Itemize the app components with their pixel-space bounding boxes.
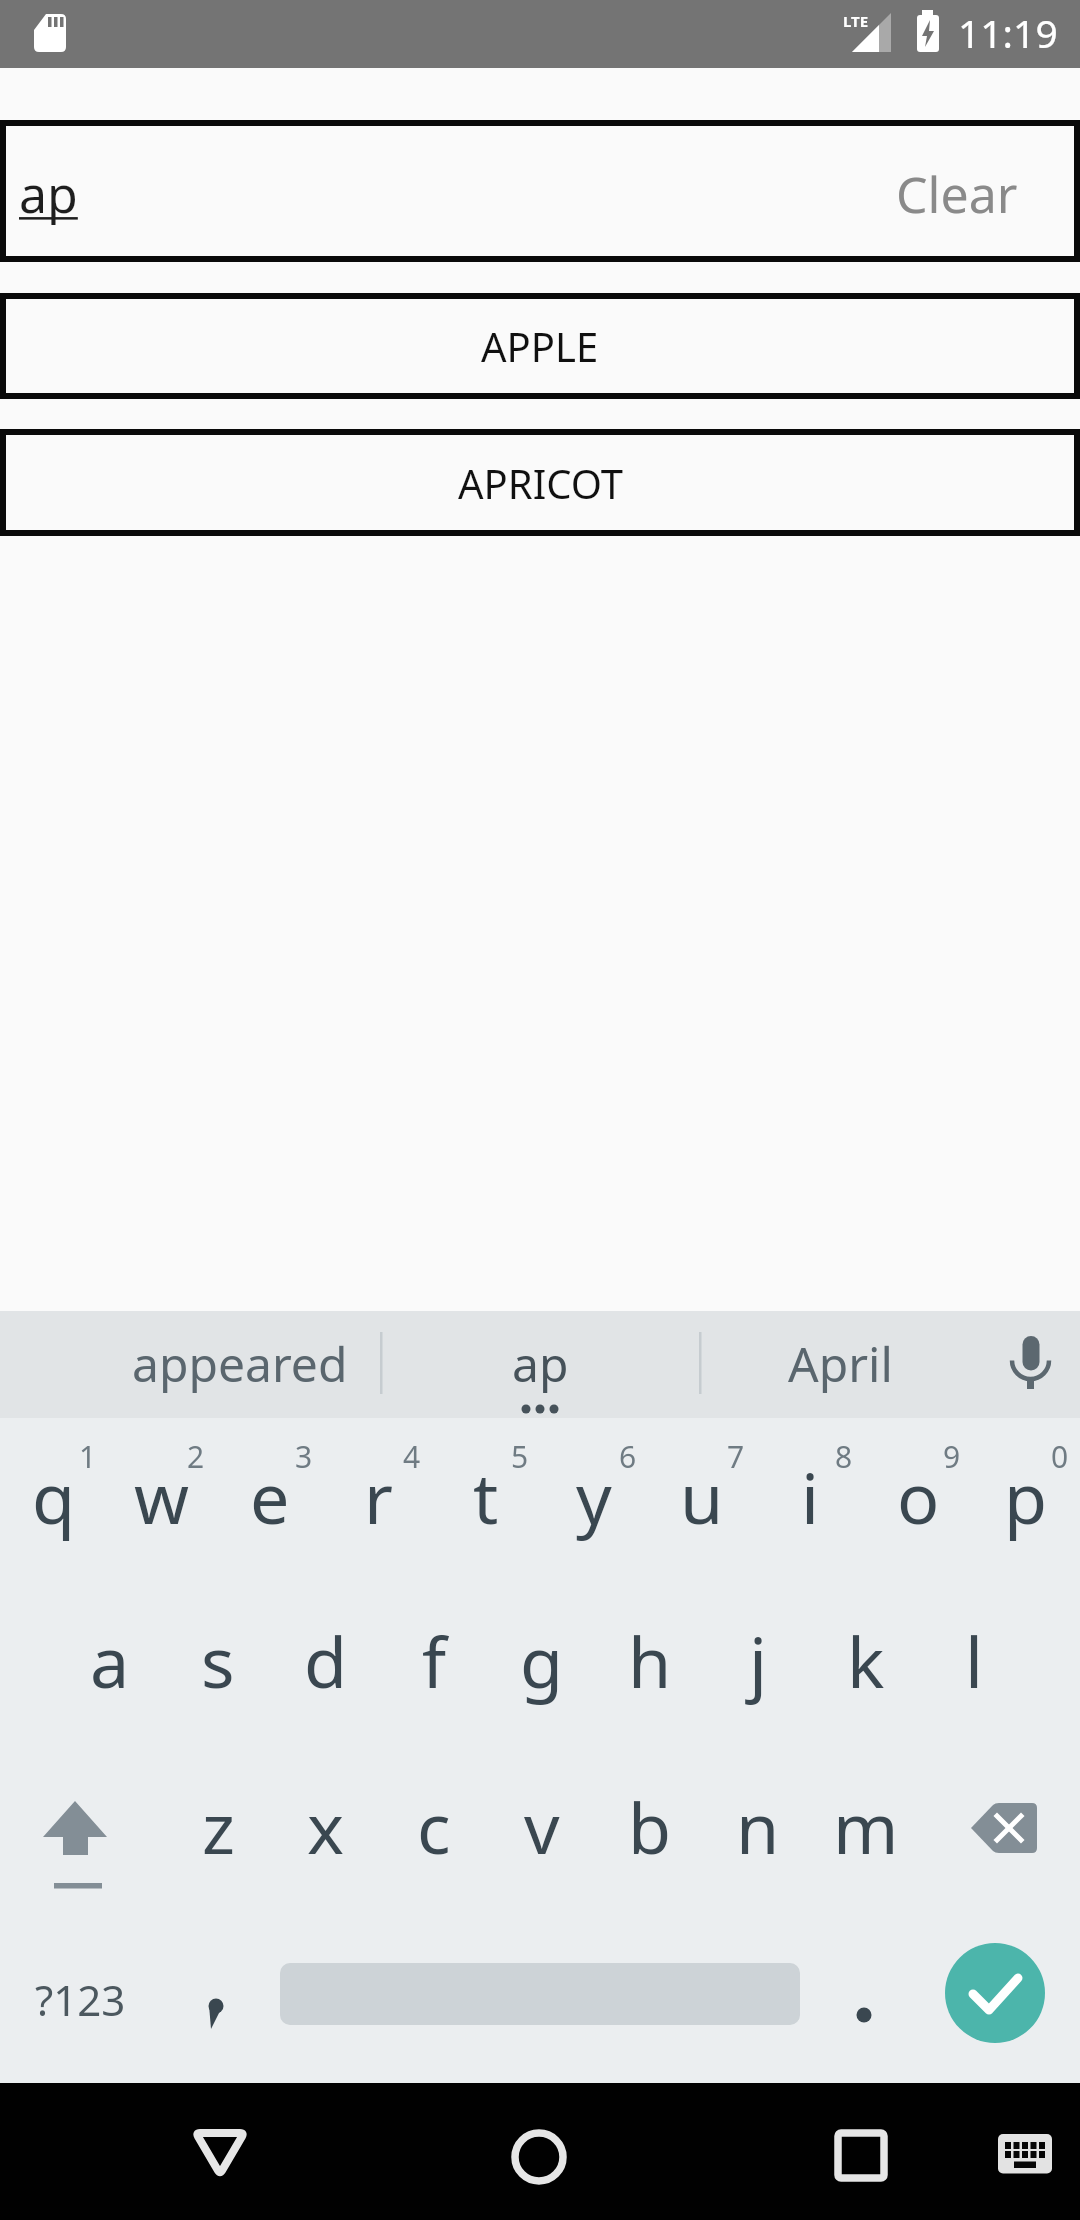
staticText: g: [520, 1613, 564, 1708]
staticText: 3: [295, 1436, 313, 1476]
staticText: v: [524, 1779, 560, 1874]
staticText: b: [628, 1779, 672, 1874]
staticText: p: [1004, 1449, 1048, 1544]
button[interactable]: [970, 2086, 1080, 2220]
button[interactable]: Clear: [857, 154, 1057, 234]
staticText: n: [736, 1779, 780, 1874]
staticText: h: [628, 1613, 672, 1708]
button[interactable]: h: [598, 1585, 702, 1735]
staticText: Clear: [896, 160, 1018, 228]
button[interactable]: g: [490, 1585, 594, 1735]
staticText: s: [201, 1613, 235, 1708]
button[interactable]: n: [706, 1751, 810, 1901]
staticText: l: [965, 1613, 984, 1708]
staticText: 7: [727, 1436, 745, 1476]
button[interactable]: y: [542, 1421, 646, 1571]
staticText: e: [250, 1449, 290, 1544]
button[interactable]: [464, 2089, 614, 2220]
staticText: u: [680, 1449, 724, 1544]
staticText: ap: [19, 160, 78, 228]
button[interactable]: a: [58, 1585, 162, 1735]
staticText: 8: [835, 1436, 853, 1476]
button[interactable]: [812, 1924, 912, 2074]
staticText: j: [749, 1613, 768, 1708]
staticText: x: [307, 1779, 345, 1874]
staticText: 1: [79, 1436, 97, 1476]
staticText: 0: [1051, 1436, 1069, 1476]
staticText: a: [90, 1613, 130, 1708]
button[interactable]: i: [758, 1421, 862, 1571]
button[interactable]: f: [382, 1585, 486, 1735]
button[interactable]: appeared: [90, 1318, 390, 1408]
staticText: ?123: [35, 1971, 126, 2028]
button[interactable]: s: [166, 1585, 270, 1735]
button[interactable]: APRICOT: [0, 429, 1080, 536]
staticText: y: [576, 1449, 612, 1544]
staticText: LTE: [843, 11, 869, 31]
button[interactable]: k: [814, 1585, 918, 1735]
button[interactable]: m: [814, 1751, 918, 1901]
staticText: f: [422, 1613, 447, 1708]
staticText: appeared: [132, 1331, 348, 1396]
button[interactable]: w: [110, 1421, 214, 1571]
button[interactable]: [165, 1924, 265, 2074]
button[interactable]: x: [274, 1751, 378, 1901]
button[interactable]: [937, 1758, 1077, 1908]
button[interactable]: u: [650, 1421, 754, 1571]
staticText: c: [417, 1779, 451, 1874]
staticText: 2: [187, 1436, 205, 1476]
button[interactable]: APPLE: [0, 293, 1080, 399]
button[interactable]: c: [382, 1751, 486, 1901]
staticText: APPLE: [481, 319, 599, 373]
staticText: APRICOT: [458, 456, 623, 510]
button[interactable]: r: [326, 1421, 430, 1571]
staticText: r: [364, 1449, 393, 1544]
button[interactable]: [786, 2088, 936, 2220]
staticText: o: [897, 1449, 940, 1544]
staticText: 11:19: [958, 6, 1058, 56]
button[interactable]: v: [490, 1751, 594, 1901]
staticText: i: [801, 1449, 820, 1544]
button[interactable]: o: [866, 1421, 970, 1571]
button[interactable]: [0, 120, 1080, 262]
button[interactable]: j: [706, 1585, 810, 1735]
button[interactable]: [5, 1758, 145, 1908]
staticText: k: [847, 1613, 885, 1708]
staticText: w: [134, 1449, 190, 1544]
button[interactable]: e: [218, 1421, 322, 1571]
staticText: 4: [403, 1436, 421, 1476]
button[interactable]: q: [2, 1421, 106, 1571]
button[interactable]: l: [922, 1585, 1026, 1735]
staticText: 5: [511, 1436, 529, 1476]
button[interactable]: [145, 2086, 295, 2220]
button[interactable]: April: [715, 1318, 965, 1408]
staticText: q: [32, 1449, 76, 1544]
staticText: z: [202, 1779, 235, 1874]
button[interactable]: b: [598, 1751, 702, 1901]
staticText: 9: [943, 1436, 961, 1476]
button[interactable]: d: [274, 1585, 378, 1735]
button[interactable]: p: [974, 1421, 1078, 1571]
button[interactable]: ap: [415, 1318, 665, 1408]
staticText: d: [304, 1613, 348, 1708]
button[interactable]: t: [434, 1421, 538, 1571]
button[interactable]: z: [166, 1751, 270, 1901]
staticText: 6: [619, 1436, 637, 1476]
staticText: April: [788, 1331, 893, 1396]
staticText: m: [833, 1779, 899, 1874]
staticText: ap: [512, 1331, 569, 1396]
button[interactable]: [945, 1943, 1045, 2043]
button[interactable]: ?123: [5, 1924, 155, 2074]
staticText: t: [473, 1449, 499, 1544]
